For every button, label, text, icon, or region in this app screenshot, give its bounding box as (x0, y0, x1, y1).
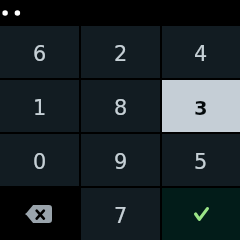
button[interactable]: Confirm (162, 188, 240, 240)
button[interactable]: 9 (81, 134, 160, 186)
staticText: 1 (33, 96, 47, 120)
button[interactable]: 0 (0, 134, 79, 186)
button[interactable]: Backspace (0, 188, 79, 240)
staticText: 2 (114, 42, 128, 66)
button[interactable]: 3 (162, 80, 240, 132)
button[interactable]: 8 (81, 80, 160, 132)
button[interactable]: 2 (81, 26, 160, 78)
button[interactable]: 6 (0, 26, 79, 78)
staticText: 9 (114, 150, 128, 174)
staticText: 7 (114, 204, 128, 228)
staticText: 5 (194, 150, 208, 174)
button[interactable]: 5 (162, 134, 240, 186)
button[interactable]: 4 (162, 26, 240, 78)
staticText: 3 (194, 97, 208, 120)
button[interactable]: 1 (0, 80, 79, 132)
button[interactable]: 7 (81, 188, 160, 240)
staticText: 0 (33, 150, 47, 174)
staticText: 6 (33, 42, 47, 66)
staticText: 8 (114, 96, 128, 120)
staticText: 4 (194, 42, 208, 66)
